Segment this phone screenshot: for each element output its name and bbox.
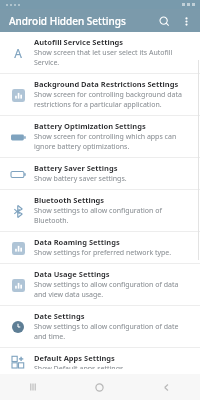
- button[interactable]: Bluetooth Settings: [0, 190, 200, 231]
- button[interactable]: Recents: [0, 374, 66, 400]
- staticText: Battery Saver Settings: [34, 163, 118, 173]
- button[interactable]: Date Settings: [0, 306, 200, 347]
- staticText: Bluetooth Settings: [34, 195, 105, 205]
- staticText: Default Apps Settings: [34, 353, 115, 363]
- button[interactable]: Back: [133, 374, 200, 400]
- button[interactable]: Home: [66, 374, 133, 400]
- staticText: A: [14, 45, 22, 61]
- staticText: Data Roaming Settings: [34, 237, 120, 247]
- staticText: Show settings to allow configuration of …: [34, 322, 192, 342]
- staticText: Show screen that let user select its Aut…: [34, 48, 192, 68]
- staticText: Show screen for controlling which apps c…: [34, 132, 192, 152]
- staticText: Show settings to allow configuration of …: [34, 206, 192, 226]
- staticText: Background Data Restrictions Settings: [34, 79, 179, 89]
- button[interactable]: A: [0, 32, 200, 73]
- button[interactable]: Search: [153, 10, 175, 32]
- button[interactable]: Battery Optimization Settings: [0, 116, 200, 157]
- staticText: Show settings to allow configuration of …: [34, 280, 192, 300]
- staticText: Autofill Service Settings: [34, 37, 124, 47]
- staticText: Show screen for controlling background d…: [34, 90, 192, 110]
- button[interactable]: Battery Saver Settings: [0, 158, 200, 189]
- staticText: Show Default apps settings.: [34, 364, 126, 369]
- staticText: Android Hidden Settings: [9, 14, 126, 28]
- staticText: Show battery saver settings.: [34, 174, 127, 184]
- staticText: Battery Optimization Settings: [34, 121, 146, 131]
- button[interactable]: Default Apps Settings: [0, 348, 200, 374]
- button[interactable]: Data Usage Settings: [0, 264, 200, 305]
- staticText: Date Settings: [34, 311, 85, 321]
- button[interactable]: Background Data Restrictions Settings: [0, 74, 200, 115]
- staticText: Data Usage Settings: [34, 269, 110, 279]
- staticText: Show settings for preferred network type…: [34, 248, 172, 258]
- button[interactable]: More options: [175, 10, 197, 32]
- button[interactable]: Data Roaming Settings: [0, 232, 200, 263]
